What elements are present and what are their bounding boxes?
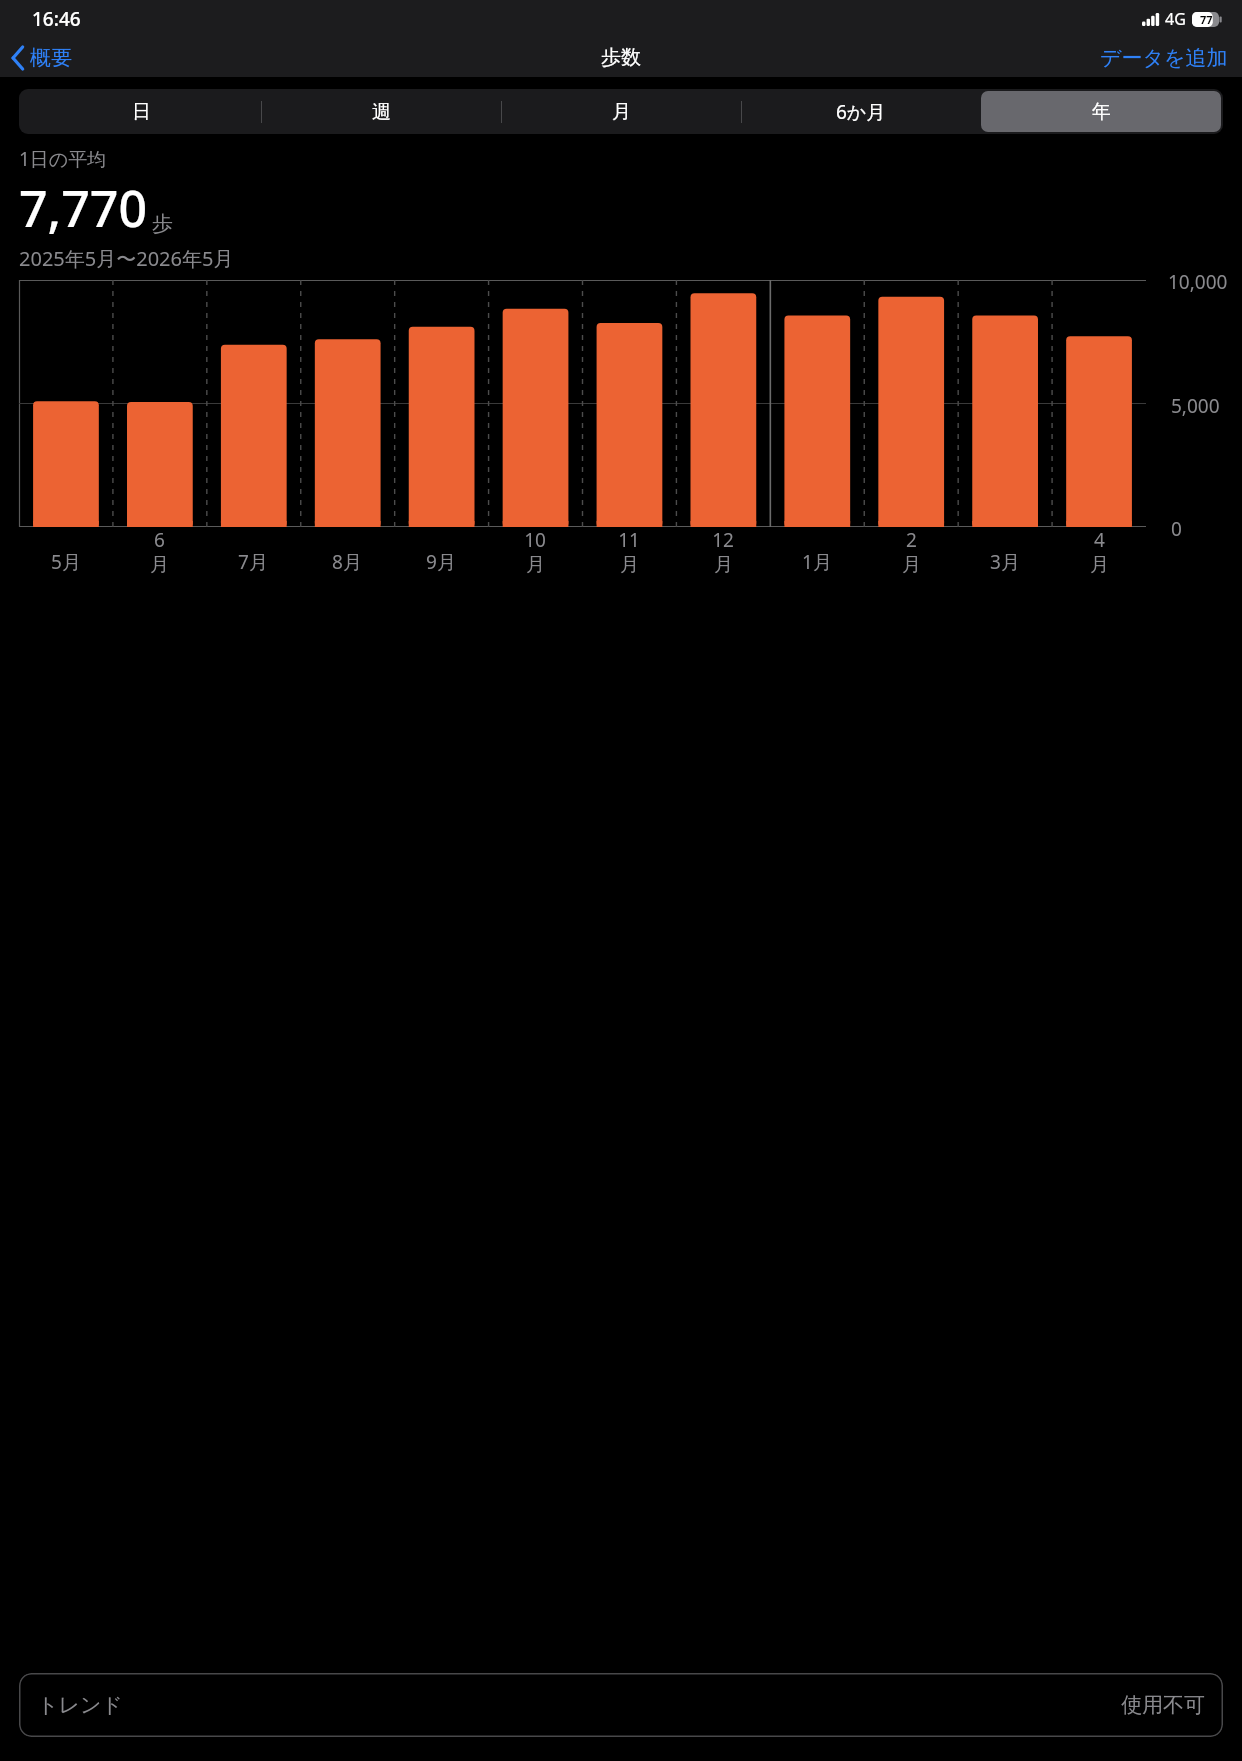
staticText: 日: [132, 100, 151, 124]
button[interactable]: データを追加: [1086, 39, 1242, 77]
staticText: 9月: [426, 549, 456, 575]
staticText: 8月: [332, 549, 362, 575]
button[interactable]: 月: [501, 91, 741, 132]
staticText: 3月: [990, 549, 1020, 575]
staticText: 歩数: [601, 45, 641, 70]
staticText: 月: [526, 553, 545, 577]
staticText: 5月: [51, 549, 81, 575]
staticText: 概要: [30, 45, 72, 71]
staticText: 2: [906, 527, 917, 553]
staticText: 月: [620, 553, 639, 577]
staticText: 月: [902, 553, 921, 577]
staticText: 週: [372, 100, 391, 124]
staticText: 月: [714, 553, 733, 577]
staticText: 6か月: [836, 99, 886, 125]
staticText: 5,000: [1171, 393, 1220, 419]
staticText: 年: [1092, 100, 1111, 124]
staticText: 月: [612, 100, 631, 124]
button[interactable]: 6か月: [741, 91, 981, 132]
staticText: 12: [712, 527, 734, 553]
button[interactable]: 概要: [0, 41, 80, 75]
staticText: 10: [524, 527, 546, 553]
staticText: 11: [618, 527, 640, 553]
staticText: 10,000: [1168, 269, 1228, 295]
staticText: 月: [1090, 553, 1109, 577]
staticText: 歩: [152, 211, 173, 237]
staticText: 7,770: [19, 174, 148, 242]
button[interactable]: 週: [261, 91, 501, 132]
staticText: 1日の平均: [19, 146, 107, 172]
staticText: 1月: [802, 549, 832, 575]
staticText: トレンド: [37, 1692, 123, 1718]
staticText: 0: [1171, 516, 1182, 542]
staticText: 使用不可: [1121, 1692, 1205, 1718]
staticText: 77: [1200, 12, 1213, 27]
staticText: 月: [150, 553, 169, 577]
button[interactable]: 日: [21, 91, 261, 132]
staticText: 4G: [1165, 8, 1186, 30]
staticText: 6: [154, 527, 165, 553]
button[interactable]: トレンド: [19, 1673, 1223, 1737]
staticText: 2025年5月〜2026年5月: [19, 245, 234, 272]
button[interactable]: 年: [981, 91, 1221, 132]
staticText: 7月: [238, 549, 268, 575]
staticText: 16:46: [32, 6, 81, 32]
staticText: 4: [1094, 527, 1105, 553]
